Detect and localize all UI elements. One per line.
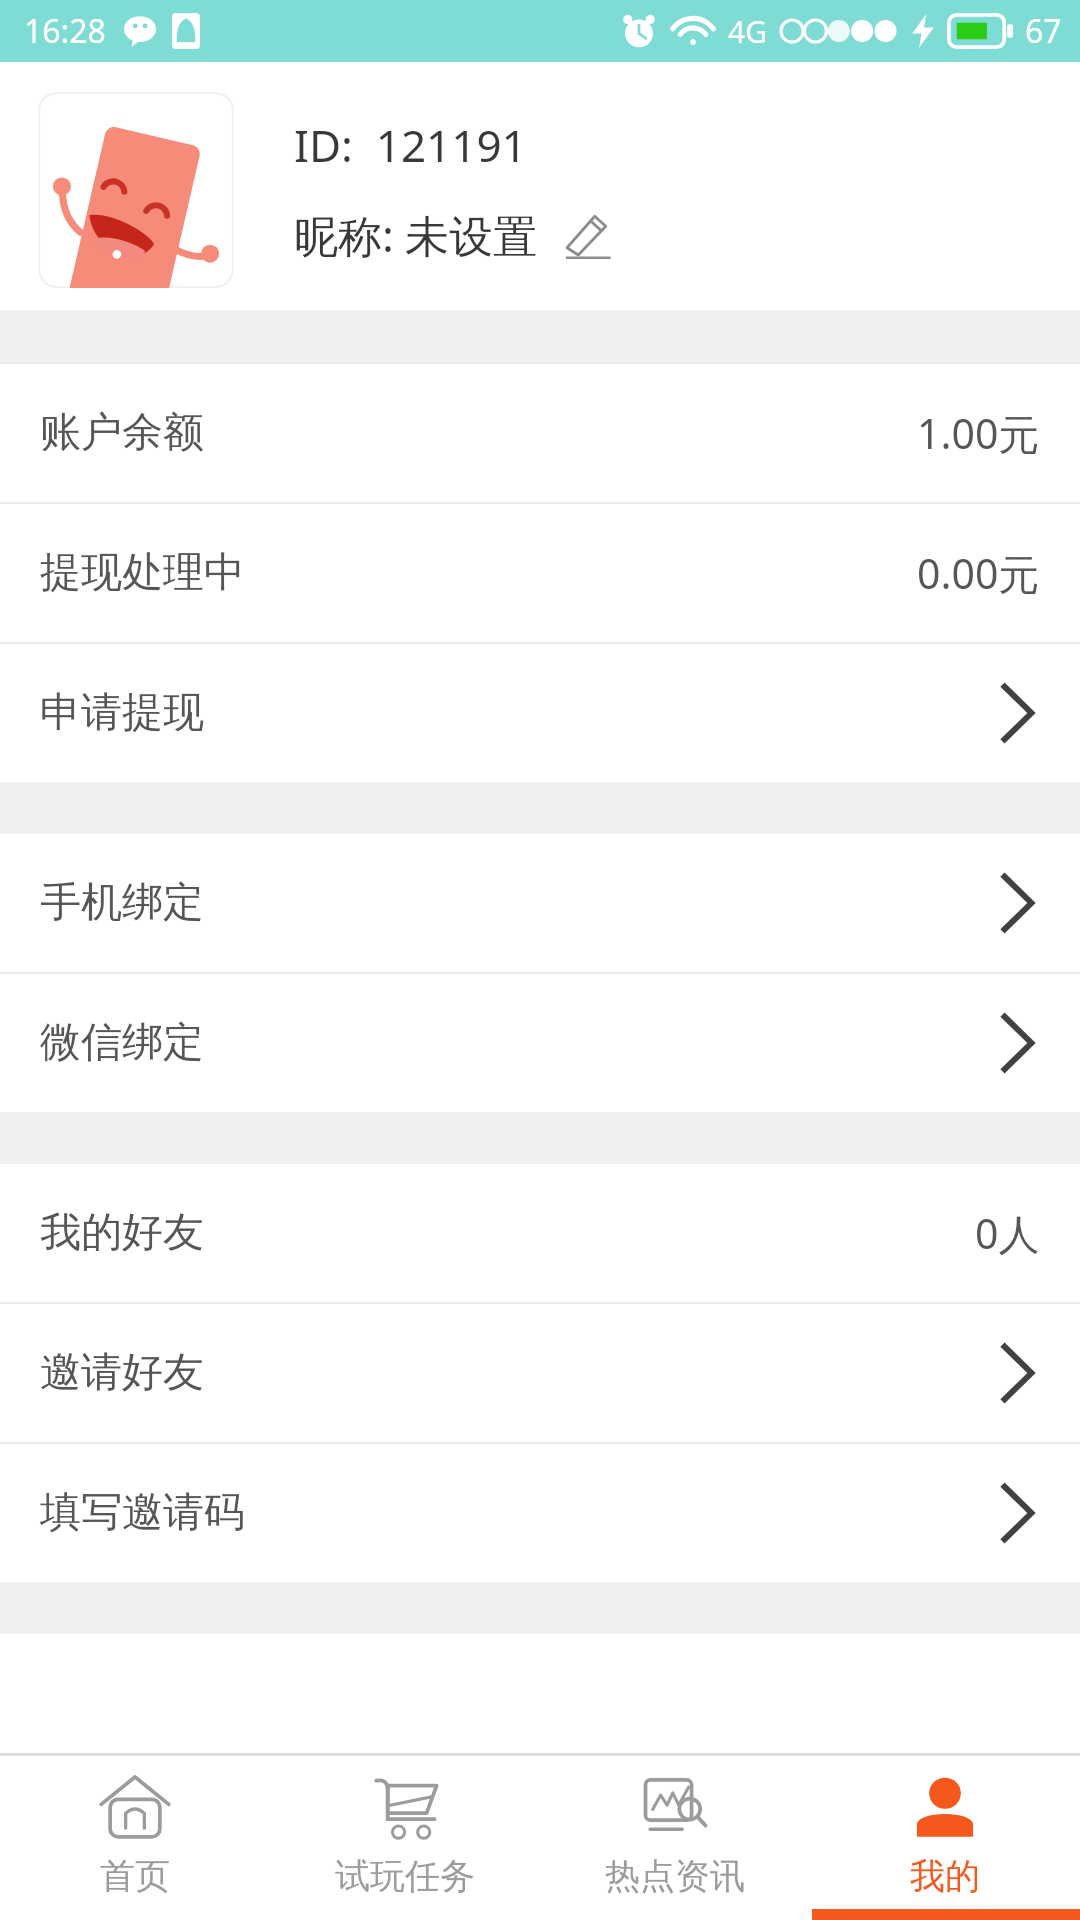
staticText: 账户余额 — [40, 407, 204, 459]
button[interactable]: 我的 — [810, 1756, 1080, 1920]
staticText: 0人 — [975, 1205, 1040, 1261]
button[interactable]: 账户余额 — [0, 364, 1080, 502]
staticText: 1.00元 — [917, 405, 1040, 461]
staticText: 邀请好友 — [40, 1347, 204, 1399]
staticText: ID: 121191 — [294, 115, 527, 175]
button[interactable]: 手机绑定 — [0, 834, 1080, 972]
button[interactable]: 提现处理中 — [0, 504, 1080, 642]
staticText: 手机绑定 — [40, 877, 204, 929]
button[interactable]: 我的好友 — [0, 1164, 1080, 1302]
staticText: 4G — [728, 11, 767, 52]
button[interactable]: 试玩任务 — [270, 1756, 540, 1920]
staticText: 我的好友 — [40, 1207, 204, 1259]
staticText: 我的 — [910, 1854, 980, 1898]
staticText: 热点资讯 — [605, 1854, 745, 1898]
staticText: 昵称: 未设置 — [294, 205, 538, 265]
staticText: 微信绑定 — [40, 1017, 204, 1069]
button[interactable]: 热点资讯 — [540, 1756, 810, 1920]
staticText: 试玩任务 — [335, 1854, 475, 1898]
button[interactable]: 编辑昵称 — [562, 210, 612, 260]
staticText: 提现处理中 — [40, 547, 245, 599]
button[interactable]: 邀请好友 — [0, 1304, 1080, 1442]
button[interactable]: 首页 — [0, 1756, 270, 1920]
staticText: 16:28 — [24, 9, 106, 53]
button[interactable]: 申请提现 — [0, 644, 1080, 782]
staticText: 67 — [1025, 9, 1062, 53]
button[interactable]: 微信绑定 — [0, 974, 1080, 1112]
staticText: 申请提现 — [40, 687, 204, 739]
button[interactable]: ID: 121191 — [0, 62, 1080, 310]
button[interactable]: 填写邀请码 — [0, 1444, 1080, 1582]
staticText: 首页 — [100, 1854, 170, 1898]
staticText: 0.00元 — [917, 545, 1040, 601]
staticText: 填写邀请码 — [40, 1487, 245, 1539]
